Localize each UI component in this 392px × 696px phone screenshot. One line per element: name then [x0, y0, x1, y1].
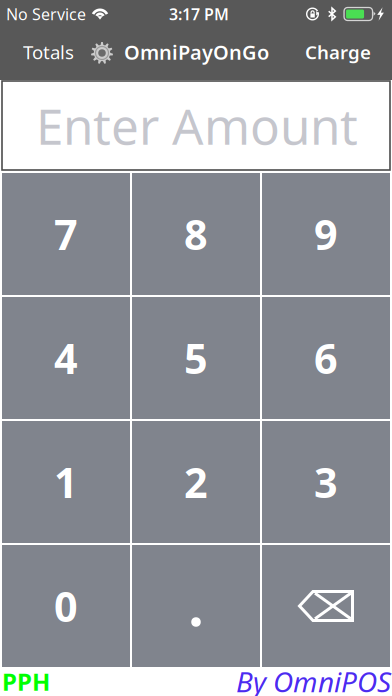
- button[interactable]: 7: [2, 173, 130, 295]
- button[interactable]: 0: [2, 545, 130, 667]
- button[interactable]: Decimal point: [132, 545, 260, 667]
- staticText: Totals: [23, 40, 74, 64]
- staticText: 4: [54, 331, 78, 385]
- staticText: 8: [184, 207, 208, 261]
- staticText: 0: [54, 579, 78, 633]
- button[interactable]: Charge: [295, 30, 381, 80]
- staticText: 9: [314, 207, 338, 261]
- button[interactable]: 1: [2, 421, 130, 543]
- staticText: 6: [314, 331, 338, 385]
- staticText: OmniPayOnGo: [124, 39, 269, 65]
- button[interactable]: 4: [2, 297, 130, 419]
- staticText: 7: [54, 207, 78, 261]
- button[interactable]: 2: [132, 421, 260, 543]
- staticText: 1: [54, 455, 78, 509]
- staticText: Enter Amount: [36, 93, 358, 158]
- staticText: 5: [184, 331, 208, 385]
- button[interactable]: Settings: [91, 30, 113, 80]
- button[interactable]: 9: [262, 173, 390, 295]
- staticText: 3:17 PM: [169, 3, 229, 25]
- staticText: 2: [184, 455, 208, 509]
- button[interactable]: 8: [132, 173, 260, 295]
- staticText: No Service: [6, 3, 86, 25]
- button[interactable]: 3: [262, 421, 390, 543]
- button[interactable]: Delete: [262, 545, 390, 667]
- button[interactable]: Totals: [13, 30, 84, 80]
- staticText: PPH: [2, 666, 50, 696]
- button[interactable]: 6: [262, 297, 390, 419]
- staticText: Charge: [305, 40, 371, 64]
- staticText: By OmniPOS: [236, 663, 391, 696]
- button[interactable]: 5: [132, 297, 260, 419]
- staticText: 3: [314, 455, 338, 509]
